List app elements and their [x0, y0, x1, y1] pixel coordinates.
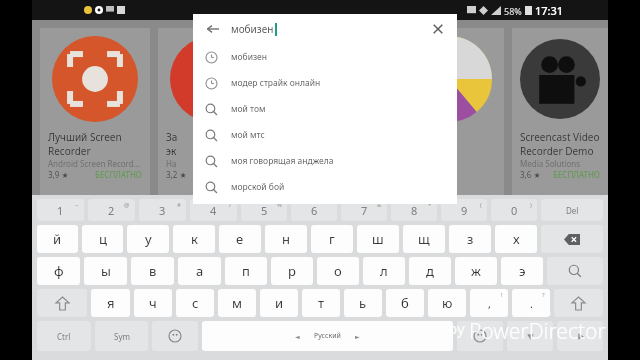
button[interactable]: м [218, 289, 256, 317]
button[interactable]: За [158, 28, 268, 195]
button[interactable]: ч [134, 289, 172, 317]
button[interactable]: мой том [193, 96, 457, 122]
button[interactable]: а [178, 257, 221, 285]
button[interactable]: б [386, 289, 424, 317]
button[interactable]: з [449, 225, 491, 253]
button[interactable]: с [176, 289, 214, 317]
button[interactable]: р [271, 257, 313, 285]
button[interactable]: 4 [190, 199, 237, 221]
button[interactable]: 2 [88, 199, 135, 221]
staticText: к [191, 230, 198, 248]
button[interactable]: Sym [95, 321, 148, 351]
button[interactable]: Del [541, 199, 603, 221]
button[interactable]: 3 [139, 199, 186, 221]
button[interactable]: я [91, 289, 130, 317]
button[interactable]: Screencast Video [512, 28, 608, 195]
button[interactable]: э [501, 257, 543, 285]
staticText: 3,2 ★ [166, 169, 187, 180]
staticText: БЕСПЛАТНО [553, 169, 600, 180]
button[interactable]: т [302, 289, 340, 317]
button[interactable]: Clear [429, 20, 447, 38]
button[interactable]: right [557, 321, 603, 351]
button[interactable]: мобизен [193, 44, 457, 70]
staticText: 17:31 [535, 3, 564, 18]
button[interactable]: ц [82, 225, 123, 253]
button[interactable]: щ [403, 225, 445, 253]
staticText: ш [372, 230, 384, 248]
button[interactable]: моя говорящая анджела [193, 148, 457, 174]
staticText: 2 [108, 203, 115, 218]
staticText: Recorder Demo [520, 144, 594, 158]
button[interactable]: ф [37, 257, 80, 285]
button[interactable]: г [311, 225, 353, 253]
staticText: а [196, 262, 204, 280]
staticText: # [177, 201, 181, 209]
button[interactable]: л [363, 257, 405, 285]
staticText: ) [530, 201, 532, 209]
button[interactable]: ь [344, 289, 382, 317]
button[interactable]: search [547, 257, 603, 285]
button[interactable]: emoji [152, 321, 198, 351]
staticText: б [401, 294, 409, 312]
button[interactable]: shift [37, 289, 87, 317]
staticText: п [242, 262, 250, 280]
staticText: ю [442, 294, 453, 312]
button[interactable]: к [173, 225, 215, 253]
button[interactable]: shift [554, 289, 603, 317]
staticText: PowerDirector [469, 317, 606, 346]
button[interactable]: и [260, 289, 298, 317]
button[interactable]: , [470, 289, 508, 317]
staticText: ! [501, 291, 503, 299]
button[interactable]: space [202, 321, 453, 351]
button[interactable]: ю [428, 289, 466, 317]
staticText: х [513, 230, 520, 248]
button[interactable]: 9 [441, 199, 487, 221]
button[interactable]: й [37, 225, 78, 253]
button[interactable]: о [317, 257, 359, 285]
button[interactable]: bksp [541, 225, 603, 253]
button[interactable]: е [219, 225, 261, 253]
button[interactable]: 8 [391, 199, 437, 221]
staticText: моя говорящая анджела [231, 155, 334, 167]
staticText: Лучший Screen [48, 130, 122, 144]
button[interactable]: Ctrl [37, 321, 91, 351]
staticText: г [329, 230, 335, 248]
button[interactable]: 1 [37, 199, 84, 221]
staticText: by [448, 318, 469, 338]
button[interactable] [394, 28, 504, 195]
staticText: ► [355, 333, 360, 340]
staticText: мой том [231, 103, 266, 115]
button[interactable]: 0 [491, 199, 537, 221]
button[interactable]: д [409, 257, 451, 285]
button[interactable]: Лучший Screen [40, 28, 150, 195]
button[interactable]: За [276, 28, 386, 195]
button[interactable]: н [265, 225, 307, 253]
button[interactable]: ы [84, 257, 127, 285]
button[interactable]: п [225, 257, 267, 285]
staticText: ( [480, 201, 482, 209]
button[interactable]: в [131, 257, 174, 285]
staticText: ? [542, 291, 545, 299]
staticText: ч [149, 294, 157, 312]
staticText: е [236, 230, 244, 248]
button[interactable]: 7 [341, 199, 387, 221]
staticText: мой мтс [231, 129, 265, 141]
button[interactable]: Back [203, 19, 223, 39]
button[interactable]: мой мтс [193, 122, 457, 148]
button[interactable]: emoji [457, 321, 503, 351]
staticText: За [166, 130, 178, 144]
button[interactable]: . [512, 289, 550, 317]
staticText: 3,6 ★ [520, 169, 541, 180]
staticText: морской бой [231, 181, 285, 193]
button[interactable]: 6 [291, 199, 337, 221]
button[interactable]: у [127, 225, 169, 253]
button[interactable]: ж [455, 257, 497, 285]
button[interactable]: морской бой [193, 174, 457, 200]
button[interactable]: 5 [241, 199, 287, 221]
button[interactable]: down [507, 321, 553, 351]
button[interactable]: х [495, 225, 537, 253]
button[interactable]: ш [357, 225, 399, 253]
button[interactable]: модер страйк онлайн [193, 70, 457, 96]
staticText: ф [54, 262, 64, 280]
